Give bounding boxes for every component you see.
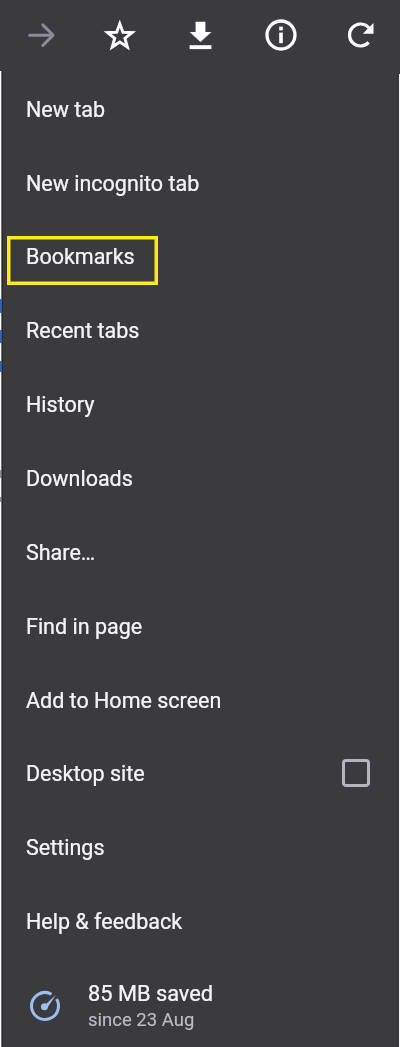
button[interactable]: New incognito tab: [2, 146, 400, 220]
button[interactable]: Page info: [240, 0, 320, 72]
button[interactable]: Share…: [2, 515, 400, 589]
button[interactable]: Download page: [160, 0, 240, 72]
button[interactable]: Desktop site: [2, 736, 400, 810]
button[interactable]: Recent tabs: [2, 293, 400, 367]
staticText: Help & feedback: [26, 909, 183, 934]
staticText: New tab: [26, 97, 106, 122]
staticText: Settings: [26, 835, 105, 860]
button[interactable]: Find in page: [2, 589, 400, 663]
button[interactable]: Help & feedback: [2, 884, 400, 958]
button[interactable]: History: [2, 367, 400, 441]
staticText: Recent tabs: [26, 318, 140, 343]
button[interactable]: Bookmark this page: [80, 0, 160, 72]
button[interactable]: Downloads: [2, 441, 400, 515]
button[interactable]: 85 MB saved: [2, 958, 400, 1047]
staticText: History: [26, 392, 95, 417]
button[interactable]: Forward: [0, 0, 80, 72]
button[interactable]: New tab: [2, 72, 400, 146]
button[interactable]: Bookmarks: [2, 219, 400, 293]
button[interactable]: Add to Home screen: [2, 663, 400, 737]
button[interactable]: Reload page: [320, 0, 398, 72]
staticText: Share…: [26, 540, 96, 565]
button[interactable]: Settings: [2, 810, 400, 884]
staticText: Add to Home screen: [26, 688, 222, 713]
staticText: New incognito tab: [26, 171, 200, 196]
staticText: 85 MB saved: [88, 981, 214, 1007]
staticText: Desktop site: [26, 761, 145, 786]
staticText: since 23 Aug: [88, 1009, 195, 1031]
staticText: Find in page: [26, 614, 143, 639]
staticText: Downloads: [26, 466, 133, 491]
staticText: Bookmarks: [26, 244, 135, 269]
